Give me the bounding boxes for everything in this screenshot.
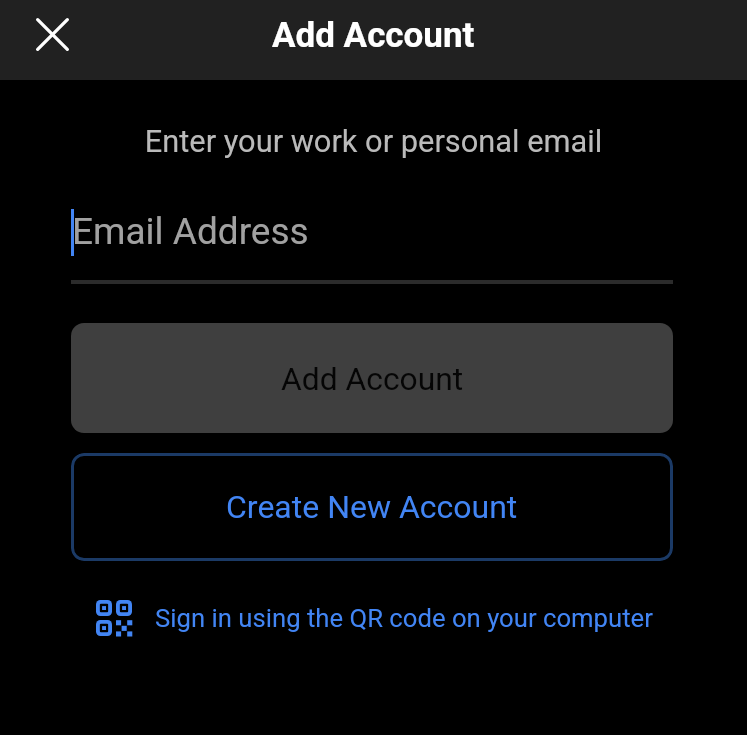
staticText: Enter your work or personal email bbox=[0, 123, 747, 159]
button[interactable]: Close bbox=[23, 5, 82, 64]
button[interactable]: Sign in using the QR code on your comput… bbox=[96, 600, 653, 636]
button[interactable]: Add Account bbox=[71, 323, 673, 433]
staticText: Sign in using the QR code on your comput… bbox=[155, 603, 653, 633]
staticText: Add Account bbox=[281, 360, 464, 397]
button[interactable]: Create New Account bbox=[71, 453, 673, 561]
staticText: Email Address bbox=[72, 210, 309, 253]
staticText: Create New Account bbox=[226, 488, 518, 526]
staticText: Add Account bbox=[272, 15, 475, 56]
